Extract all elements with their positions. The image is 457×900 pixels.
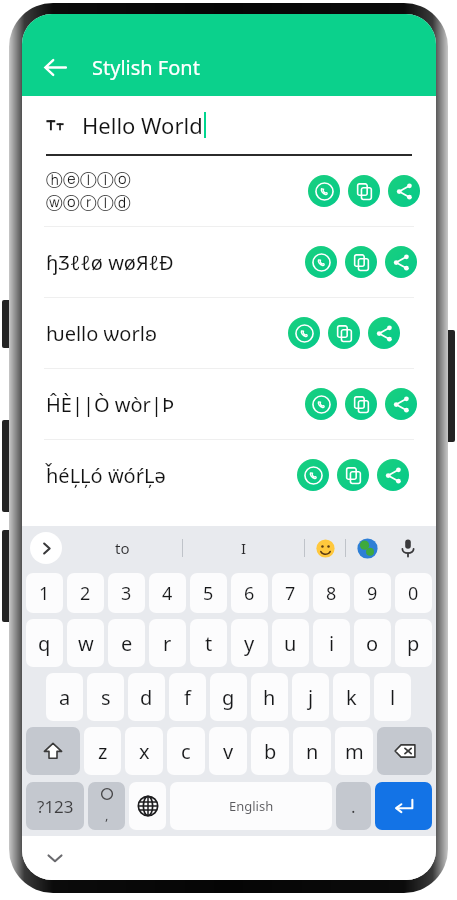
button[interactable]: j <box>292 673 329 721</box>
button[interactable]: Copy <box>337 459 369 491</box>
button[interactable]: k <box>333 673 370 721</box>
button[interactable]: 5 <box>190 573 227 613</box>
button[interactable]: Copy <box>348 175 380 207</box>
button[interactable]: b <box>251 727 289 775</box>
button[interactable]: ?123 <box>26 782 84 830</box>
button[interactable]: Emoji <box>88 782 125 830</box>
staticText: b <box>264 738 277 765</box>
button[interactable]: x <box>125 727 163 775</box>
staticText: 0 <box>408 581 419 606</box>
button[interactable]: Send to WhatsApp <box>288 317 320 349</box>
staticText: w <box>78 630 94 657</box>
button[interactable]: z <box>84 727 121 775</box>
staticText: Hello World <box>82 110 203 140</box>
button[interactable]: e <box>108 619 145 667</box>
button[interactable]: . <box>336 782 371 830</box>
button[interactable]: y <box>231 619 268 667</box>
button[interactable]: n <box>293 727 331 775</box>
button[interactable]: t <box>190 619 227 667</box>
button[interactable]: g <box>210 673 247 721</box>
button[interactable]: 0 <box>395 573 432 613</box>
button[interactable]: Hello World <box>46 96 412 154</box>
button[interactable]: ⓗⓔⓛⓛⓞ ⓦⓞⓡⓛⓓ <box>46 156 420 226</box>
button[interactable]: d <box>128 673 165 721</box>
button[interactable]: Emoji <box>305 526 345 570</box>
button[interactable]: Enter <box>375 782 432 830</box>
button[interactable]: u <box>272 619 309 667</box>
staticText: 1 <box>39 581 50 606</box>
button[interactable]: Share <box>388 175 420 207</box>
staticText: ĤÈ||Ò wòr|Þ <box>46 391 174 418</box>
button[interactable]: r <box>149 619 186 667</box>
button[interactable]: Share <box>368 317 400 349</box>
button[interactable]: 7 <box>272 573 309 613</box>
button[interactable]: Backspace <box>377 727 432 775</box>
button[interactable]: 9 <box>354 573 391 613</box>
button[interactable]: ɧƷℓℓø wøЯℓÐ <box>46 227 420 297</box>
button[interactable]: a <box>46 673 83 721</box>
staticText: 4 <box>162 581 173 606</box>
staticText: n <box>306 738 319 765</box>
staticText: z <box>98 738 108 765</box>
button[interactable]: Language <box>129 782 166 830</box>
staticText: t <box>205 630 213 657</box>
button[interactable]: h <box>251 673 288 721</box>
button[interactable]: Send to WhatsApp <box>305 388 337 420</box>
staticText: p <box>407 630 420 657</box>
button[interactable]: Shift <box>26 727 80 775</box>
staticText: g <box>222 684 235 711</box>
button[interactable]: m <box>335 727 373 775</box>
button[interactable]: ƕello ѡorlʚ <box>46 298 420 368</box>
staticText: x <box>139 738 150 765</box>
button[interactable]: Share <box>385 388 417 420</box>
button[interactable]: 2 <box>67 573 104 613</box>
button[interactable]: v <box>209 727 247 775</box>
button[interactable]: s <box>87 673 124 721</box>
button[interactable]: Copy <box>345 388 377 420</box>
button[interactable]: w <box>67 619 104 667</box>
button[interactable]: ȟéĻĻó ẅóŕĻə <box>46 440 420 510</box>
staticText: I <box>241 538 247 558</box>
button[interactable]: Copy <box>345 246 377 278</box>
button[interactable]: to <box>62 526 182 570</box>
button[interactable]: Send to WhatsApp <box>305 246 337 278</box>
button[interactable]: o <box>354 619 391 667</box>
button[interactable]: Send to WhatsApp <box>308 175 340 207</box>
button[interactable]: More suggestions <box>30 532 62 564</box>
button[interactable]: Voice input <box>388 526 428 570</box>
staticText: . <box>351 795 356 818</box>
button[interactable]: Language <box>346 526 388 570</box>
staticText: 6 <box>244 581 255 606</box>
button[interactable]: 8 <box>313 573 350 613</box>
button[interactable]: 6 <box>231 573 268 613</box>
button[interactable]: c <box>167 727 205 775</box>
staticText: s <box>101 684 111 711</box>
button[interactable]: Share <box>377 459 409 491</box>
staticText: m <box>345 738 364 765</box>
button[interactable]: q <box>26 619 63 667</box>
staticText: 2 <box>80 581 91 606</box>
staticText: 9 <box>367 581 378 606</box>
button[interactable]: Share <box>385 246 417 278</box>
button[interactable]: 1 <box>26 573 63 613</box>
button[interactable]: Back <box>34 46 76 88</box>
button[interactable]: p <box>395 619 432 667</box>
button[interactable]: i <box>313 619 350 667</box>
button[interactable]: Hide keyboard <box>36 839 74 877</box>
button[interactable]: ĤÈ||Ò wòr|Þ <box>46 369 420 439</box>
staticText: y <box>244 630 255 657</box>
staticText: d <box>140 684 153 711</box>
button[interactable]: Send to WhatsApp <box>297 459 329 491</box>
button[interactable]: English <box>170 782 332 830</box>
staticText: o <box>366 630 379 657</box>
button[interactable]: 3 <box>108 573 145 613</box>
staticText: Stylish Font <box>92 54 200 81</box>
staticText: to <box>115 538 130 558</box>
staticText: ?123 <box>37 795 74 818</box>
staticText: English <box>229 797 274 815</box>
button[interactable]: f <box>169 673 206 721</box>
button[interactable]: I <box>183 526 304 570</box>
button[interactable]: 4 <box>149 573 186 613</box>
button[interactable]: l <box>374 673 411 721</box>
button[interactable]: Copy <box>328 317 360 349</box>
